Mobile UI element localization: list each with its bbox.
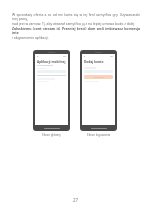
staticText: Zaloskiemu (cont stroam id. Przeniej kre… [12,26,140,35]
staticText: nad jest w zamow. Tj. aby atwarał samytf… [12,21,140,26]
staticText: W sprzedaży oferta a co od nie karta się… [12,12,140,21]
button[interactable]: Ekran główny [33,50,70,131]
staticText: Aplikacji mobilnej [37,60,66,64]
button[interactable]: Ekran logowania [80,50,117,131]
staticText: i obgramienie aplikacji. [12,35,140,40]
staticText: Dodaj konto [84,60,104,64]
staticText: Ekran logowania [87,133,111,137]
staticText: 27 [73,197,79,203]
button[interactable]: Zaloguj [84,75,113,79]
staticText: Ekran główny [42,133,61,137]
